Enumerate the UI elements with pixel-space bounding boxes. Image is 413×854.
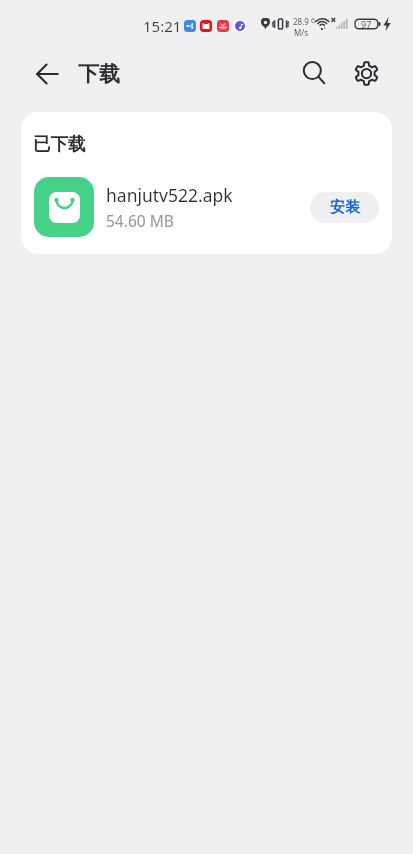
staticText: 15:21 [143, 16, 182, 36]
staticText: 安装 [330, 198, 360, 217]
staticText: 54.60 MB [106, 210, 174, 231]
button[interactable]: Back [32, 58, 62, 88]
button[interactable]: hanjutv522.apk [21, 172, 392, 242]
staticText: 下载 [78, 61, 120, 87]
button[interactable]: 安装 [310, 192, 379, 223]
button[interactable]: Search [296, 55, 332, 91]
staticText: M/s [294, 27, 309, 38]
staticText: 6 [311, 16, 316, 26]
button[interactable]: Settings [348, 55, 384, 91]
staticText: 28.9 [293, 16, 309, 27]
staticText: 已下载 [33, 133, 86, 155]
staticText: hanjutv522.apk [106, 183, 233, 207]
staticText: 97 [361, 18, 372, 30]
